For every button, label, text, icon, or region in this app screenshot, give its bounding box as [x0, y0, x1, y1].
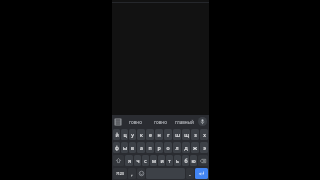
staticText: л — [175, 144, 179, 151]
staticText: и — [160, 157, 164, 164]
button[interactable]: Shift — [113, 155, 124, 166]
button[interactable]: Voice input — [196, 115, 209, 128]
button[interactable]: в — [129, 142, 136, 153]
staticText: в — [131, 144, 134, 151]
staticText: д — [184, 144, 188, 151]
staticText: г — [167, 131, 170, 138]
staticText: говно — [129, 119, 142, 125]
staticText: е — [149, 131, 152, 138]
button[interactable]: з — [191, 129, 199, 140]
button[interactable]: ы — [121, 142, 128, 153]
staticText: п — [148, 144, 152, 151]
staticText: х — [203, 131, 206, 138]
staticText: з — [194, 131, 197, 138]
button[interactable]: а — [137, 142, 145, 153]
button[interactable]: к — [137, 129, 145, 140]
staticText: ш — [175, 131, 180, 138]
button[interactable]: е — [146, 129, 154, 140]
button[interactable]: у — [129, 129, 136, 140]
staticText: говно — [154, 119, 167, 125]
button[interactable]: ф — [113, 142, 120, 153]
staticText: ы — [123, 144, 127, 151]
staticText: главный — [175, 119, 194, 125]
button[interactable]: б — [182, 155, 189, 166]
button[interactable]: , — [128, 168, 136, 179]
staticText: а — [140, 144, 143, 151]
staticText: м — [152, 157, 156, 164]
staticText: я — [128, 157, 131, 164]
staticText: ц — [123, 131, 127, 138]
staticText: р — [157, 144, 161, 151]
button[interactable]: Enter — [195, 168, 208, 179]
button[interactable]: главный — [172, 115, 196, 128]
button[interactable]: р — [155, 142, 163, 153]
button[interactable]: ц — [121, 129, 128, 140]
button[interactable]: Emoji — [137, 168, 145, 179]
button[interactable]: говно — [123, 115, 148, 128]
button[interactable]: говно — [148, 115, 172, 128]
button[interactable]: о — [164, 142, 172, 153]
staticText: ю — [191, 157, 196, 164]
staticText: ф — [115, 144, 119, 151]
staticText: , — [131, 170, 133, 177]
staticText: ч — [136, 157, 140, 164]
button[interactable]: ю — [190, 155, 197, 166]
button[interactable]: ч — [134, 155, 141, 166]
staticText: . — [189, 170, 191, 177]
button[interactable]: э — [200, 142, 208, 153]
button[interactable]: п — [146, 142, 154, 153]
staticText: ?123 — [116, 171, 124, 176]
button[interactable]: т — [166, 155, 173, 166]
button[interactable]: с — [142, 155, 149, 166]
staticText: э — [203, 144, 206, 151]
staticText: б — [184, 157, 188, 164]
staticText: с — [144, 157, 147, 164]
button[interactable]: Backspace — [198, 155, 208, 166]
staticText: ь — [176, 157, 179, 164]
button[interactable]: . — [186, 168, 194, 179]
staticText: о — [166, 144, 170, 151]
staticText: н — [157, 131, 161, 138]
button[interactable]: м — [150, 155, 157, 166]
button[interactable]: щ — [182, 129, 190, 140]
button[interactable]: д — [182, 142, 190, 153]
button[interactable]: н — [155, 129, 163, 140]
button[interactable]: ш — [173, 129, 181, 140]
button[interactable]: л — [173, 142, 181, 153]
staticText: щ — [184, 131, 189, 138]
button[interactable]: х — [200, 129, 208, 140]
button[interactable]: ж — [191, 142, 199, 153]
staticText: т — [168, 157, 171, 164]
staticText: у — [131, 131, 134, 138]
button[interactable]: и — [158, 155, 165, 166]
button[interactable]: я — [125, 155, 133, 166]
button[interactable]: й — [113, 129, 120, 140]
button[interactable]: ?123 — [113, 168, 127, 179]
button[interactable]: Clipboard and tools — [112, 115, 123, 128]
button[interactable]: ь — [174, 155, 181, 166]
button[interactable]: г — [164, 129, 172, 140]
staticText: й — [115, 131, 119, 138]
staticText: ж — [193, 144, 197, 151]
staticText: к — [140, 131, 143, 138]
